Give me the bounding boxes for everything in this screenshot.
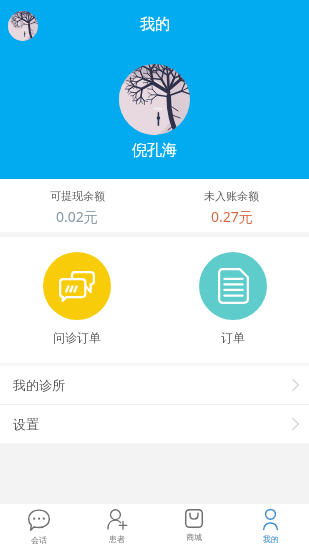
staticText: 倪孔海 bbox=[132, 141, 177, 160]
button[interactable]: 会话 bbox=[0, 504, 78, 550]
button[interactable]: 商城 bbox=[155, 504, 232, 550]
staticText: 会话 bbox=[31, 535, 47, 545]
staticText: 可提现余额 bbox=[50, 189, 105, 203]
staticText: 我的诊所 bbox=[13, 377, 65, 393]
staticText: 问诊订单 bbox=[53, 330, 101, 345]
button[interactable]: Avatar bbox=[119, 64, 190, 135]
button[interactable]: 我的 bbox=[232, 504, 309, 550]
staticText: 未入账余额 bbox=[204, 189, 259, 203]
button[interactable]: 患者 bbox=[78, 504, 155, 550]
staticText: 0.02元 bbox=[56, 207, 98, 226]
staticText: 0.27元 bbox=[211, 207, 253, 226]
button[interactable]: 设置 bbox=[0, 405, 309, 443]
staticText: 我的 bbox=[140, 15, 170, 34]
staticText: 商城 bbox=[186, 532, 202, 542]
staticText: 患者 bbox=[109, 534, 125, 544]
staticText: 设置 bbox=[13, 416, 39, 432]
button[interactable]: 订单 bbox=[198, 252, 267, 345]
button[interactable]: 问诊订单 bbox=[42, 252, 111, 345]
button[interactable]: 我的诊所 bbox=[0, 366, 309, 404]
staticText: 订单 bbox=[221, 330, 245, 345]
button[interactable]: 未入账余额 bbox=[154, 179, 309, 232]
button[interactable]: Profile photo bbox=[8, 11, 38, 41]
button[interactable]: 可提现余额 bbox=[0, 179, 154, 232]
staticText: 我的 bbox=[263, 534, 279, 544]
